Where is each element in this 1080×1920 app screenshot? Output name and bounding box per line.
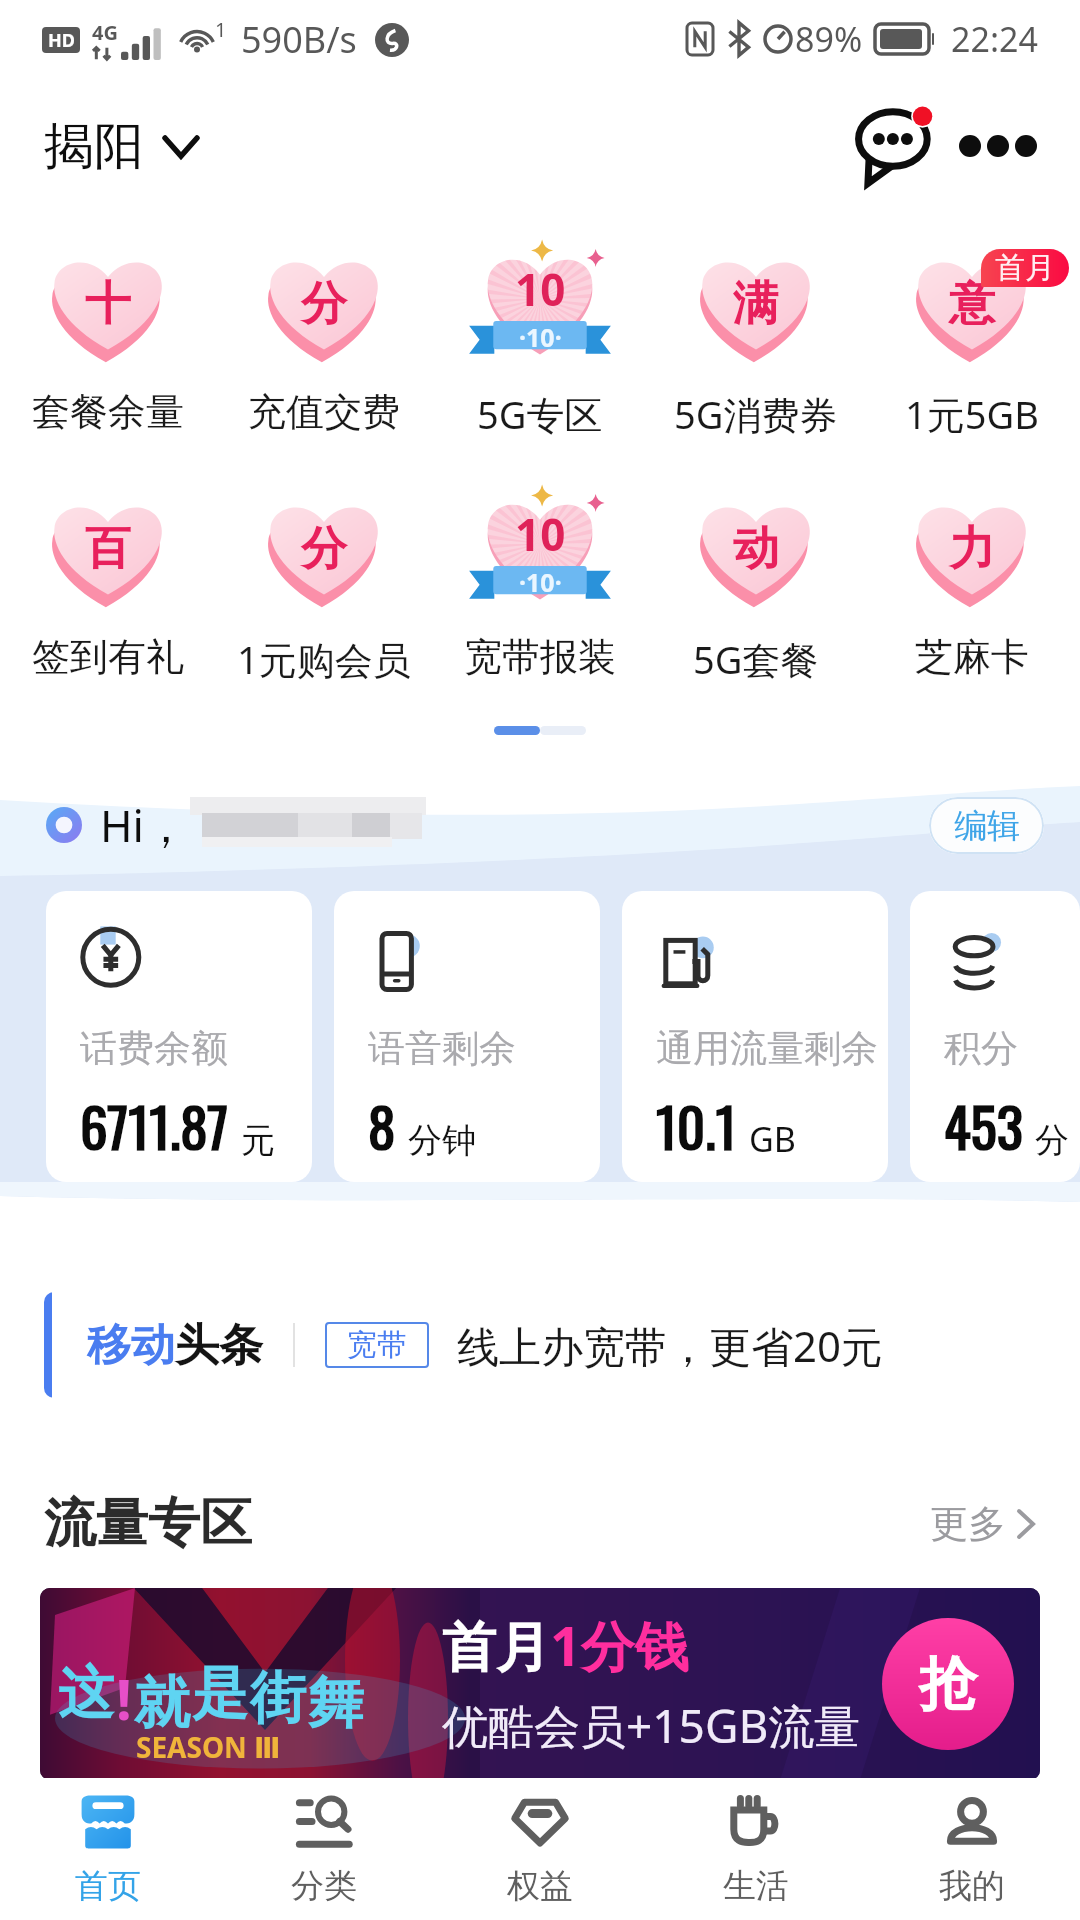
staticText: 是 bbox=[192, 1658, 248, 1729]
staticText: 语音剩余 bbox=[368, 1025, 516, 1072]
button[interactable]: 权益 bbox=[432, 1778, 648, 1920]
button[interactable]: 生活 bbox=[648, 1778, 864, 1920]
staticText: 5G专区 bbox=[477, 388, 603, 440]
staticText: 1元购会员 bbox=[237, 633, 411, 685]
staticText: HD bbox=[48, 28, 75, 53]
staticText: ·10· bbox=[519, 565, 562, 599]
staticText: 抢 bbox=[919, 1648, 977, 1721]
button[interactable]: 我的 bbox=[864, 1778, 1080, 1920]
button[interactable]: 消息 bbox=[848, 98, 944, 194]
staticText: 宽带 bbox=[347, 1326, 407, 1364]
button[interactable]: 揭阳 bbox=[44, 115, 200, 178]
button[interactable]: 语音剩余 bbox=[334, 891, 600, 1182]
staticText: 10 bbox=[515, 504, 566, 564]
staticText: 通用流量剩余 bbox=[656, 1025, 878, 1072]
staticText: 揭阳 bbox=[44, 115, 144, 178]
button[interactable]: 这 bbox=[40, 1588, 1040, 1780]
staticText: 10 bbox=[515, 259, 566, 319]
staticText: 就 bbox=[134, 1668, 190, 1739]
button[interactable]: 意 bbox=[864, 250, 1080, 440]
staticText: 4G bbox=[92, 19, 118, 46]
staticText: 10.1 bbox=[656, 1084, 737, 1166]
staticText: 元 bbox=[241, 1119, 275, 1162]
button[interactable]: 分 bbox=[216, 495, 432, 685]
button[interactable]: 分类 bbox=[216, 1778, 432, 1920]
staticText: GB bbox=[749, 1116, 796, 1162]
staticText: 芝麻卡 bbox=[915, 633, 1029, 681]
staticText: 权益 bbox=[507, 1865, 573, 1907]
staticText: 积分 bbox=[944, 1025, 1018, 1072]
staticText: 5G消费券 bbox=[674, 388, 838, 440]
staticText: 百 bbox=[85, 520, 131, 578]
staticText: 套餐余量 bbox=[32, 388, 184, 436]
staticText: 意 bbox=[949, 275, 995, 333]
staticText: 1分钱 bbox=[550, 1608, 689, 1682]
staticText: 动 bbox=[733, 520, 779, 578]
staticText: 流量专区 bbox=[44, 1491, 252, 1557]
staticText: 首月 bbox=[995, 249, 1055, 287]
staticText: 充值交费 bbox=[248, 388, 400, 436]
staticText: 生活 bbox=[723, 1865, 789, 1907]
staticText: 街 bbox=[250, 1663, 306, 1734]
staticText: SEASON Ⅲ bbox=[136, 1728, 281, 1766]
button[interactable]: 更多 bbox=[950, 98, 1046, 194]
staticText: 22:24 bbox=[951, 16, 1038, 62]
staticText: 宽带报装 bbox=[464, 633, 616, 681]
button[interactable]: 十 bbox=[0, 250, 216, 436]
staticText: 89% bbox=[795, 16, 863, 62]
staticText: 移动 bbox=[87, 1318, 175, 1373]
staticText: 签到有礼 bbox=[32, 633, 184, 681]
button[interactable]: 满 bbox=[648, 250, 864, 440]
staticText: 1元5GB bbox=[905, 388, 1039, 440]
staticText: 分 bbox=[301, 520, 347, 578]
staticText: ! bbox=[116, 1660, 132, 1736]
button[interactable]: 10 bbox=[432, 495, 648, 681]
staticText: 更多 bbox=[930, 1500, 1006, 1548]
staticText: 分类 bbox=[291, 1865, 357, 1907]
staticText: 满 bbox=[733, 275, 779, 333]
staticText: 分 bbox=[301, 275, 347, 333]
button[interactable]: 分 bbox=[216, 250, 432, 436]
staticText: 5G套餐 bbox=[693, 633, 819, 685]
staticText: 舞 bbox=[308, 1668, 364, 1739]
button[interactable]: 积分 bbox=[910, 891, 1080, 1182]
button[interactable]: 首页 bbox=[0, 1778, 216, 1920]
button[interactable]: 10 bbox=[432, 250, 648, 440]
staticText: Hi， bbox=[100, 795, 188, 855]
staticText: 话费余额 bbox=[80, 1025, 228, 1072]
staticText: 6711.87 bbox=[80, 1084, 229, 1166]
staticText: 首页 bbox=[75, 1865, 141, 1907]
button[interactable]: 力 bbox=[864, 495, 1080, 681]
staticText: 编辑 bbox=[954, 805, 1020, 847]
staticText: 线上办宽带，更省20元 bbox=[457, 1317, 884, 1374]
staticText: ·10· bbox=[519, 320, 562, 354]
button[interactable]: 编辑 bbox=[929, 797, 1044, 854]
staticText: 力 bbox=[949, 520, 995, 578]
button[interactable]: 更多 bbox=[930, 1500, 1036, 1548]
staticText: 我的 bbox=[939, 1865, 1005, 1907]
staticText: 453 bbox=[944, 1084, 1023, 1166]
button[interactable]: 话费余额 bbox=[46, 891, 312, 1182]
staticText: 1 bbox=[215, 16, 227, 43]
staticText: 8 bbox=[368, 1084, 396, 1166]
button[interactable]: 动 bbox=[648, 495, 864, 685]
staticText: 优酷会员+15GB流量 bbox=[442, 1694, 861, 1757]
button[interactable]: 移动 bbox=[44, 1292, 1036, 1398]
staticText: 590B/s bbox=[241, 15, 357, 64]
staticText: 头条 bbox=[175, 1318, 263, 1373]
staticText: 十 bbox=[85, 275, 131, 333]
staticText: 分 bbox=[1035, 1119, 1069, 1162]
staticText: 分钟 bbox=[408, 1119, 476, 1162]
staticText: 这 bbox=[58, 1658, 114, 1729]
button[interactable]: 通用流量剩余 bbox=[622, 891, 888, 1182]
button[interactable]: 百 bbox=[0, 495, 216, 681]
staticText: 首月 bbox=[442, 1614, 550, 1682]
